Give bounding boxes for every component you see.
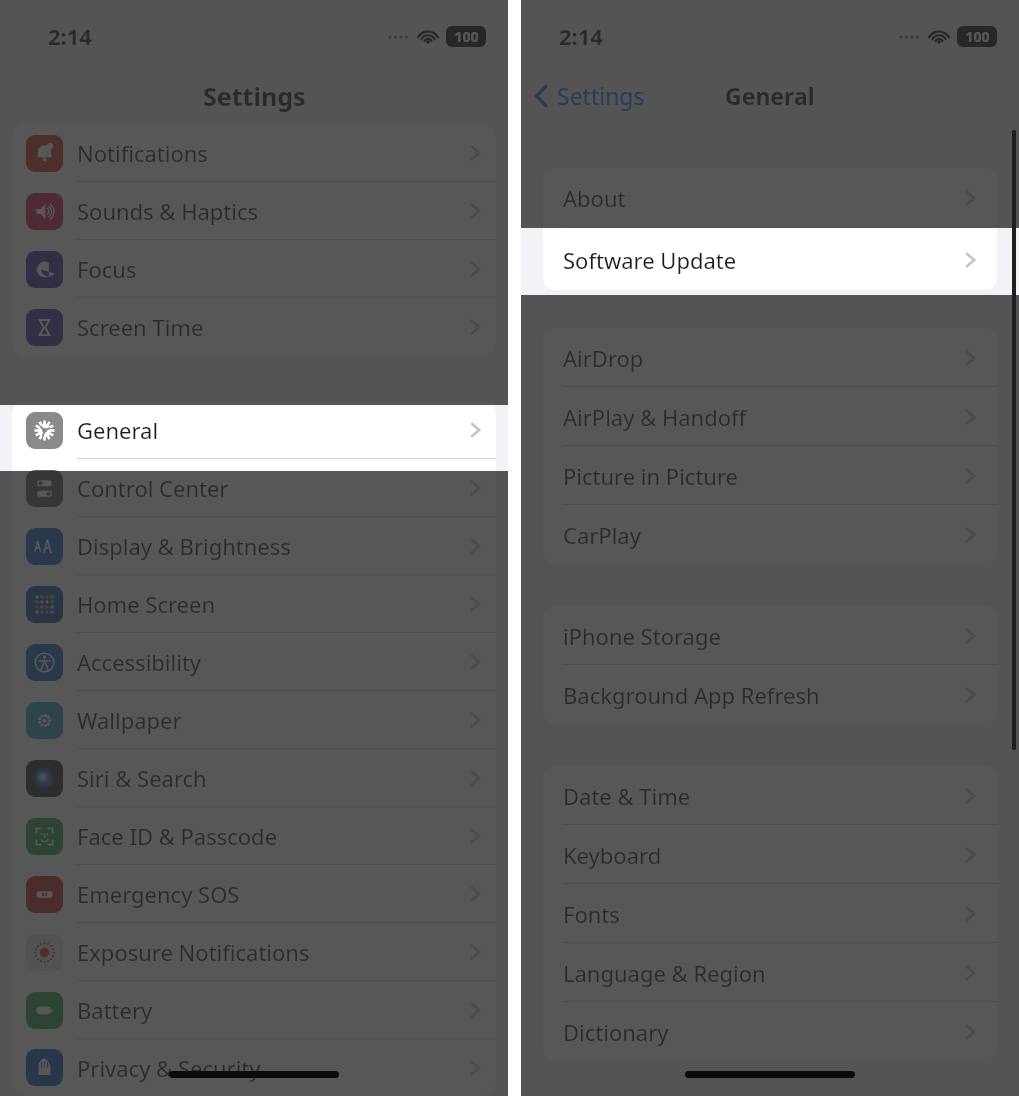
staticText: CarPlay [563,520,641,550]
button[interactable]: Battery [12,981,496,1039]
staticText: Focus [77,254,137,284]
staticText: Control Center [77,473,229,503]
staticText: About [563,183,626,213]
button[interactable]: Software Update [543,229,997,290]
button[interactable]: Display & Brightness [12,517,496,575]
staticText: Dictionary [563,1017,669,1047]
staticText: General [725,80,815,111]
staticText: Battery [77,995,153,1025]
staticText: Siri & Search [77,763,207,793]
button[interactable]: Settings [533,80,645,111]
button[interactable]: Control Center [12,459,496,517]
staticText: Keyboard [563,840,662,870]
button[interactable]: Dictionary [543,1002,997,1061]
staticText: Settings [203,79,306,113]
staticText: 100 [965,27,990,46]
button[interactable]: Accessibility [12,633,496,691]
staticText: AirDrop [563,343,644,373]
staticText: 100 [454,27,479,46]
button[interactable]: CarPlay [543,505,997,564]
staticText: Fonts [563,899,620,929]
button[interactable]: Home Screen [12,575,496,633]
button[interactable]: Privacy & Security [12,1039,496,1096]
button[interactable]: Software Update [543,227,997,286]
staticText: Language & Region [563,958,766,988]
button[interactable]: Face ID & Passcode [12,807,496,865]
staticText: Sounds & Haptics [77,196,259,226]
staticText: Background App Refresh [563,680,820,710]
staticText: Software Update [563,242,737,272]
staticText: Display & Brightness [77,531,291,561]
button[interactable]: Keyboard [543,825,997,884]
staticText: Emergency SOS [77,879,240,909]
button[interactable]: Language & Region [543,943,997,1002]
button[interactable]: Fonts [543,884,997,943]
button[interactable]: General [12,401,496,459]
button[interactable]: Picture in Picture [543,446,997,505]
button[interactable]: Exposure Notifications [12,923,496,981]
staticText: Wallpaper [77,705,182,735]
staticText: General [77,415,159,445]
staticText: 2:14 [48,21,92,51]
button[interactable]: Wallpaper [12,691,496,749]
staticText: Face ID & Passcode [77,821,278,851]
button[interactable]: Date & Time [543,766,997,825]
button[interactable]: Screen Time [12,298,496,356]
staticText: Home Screen [77,589,216,619]
button[interactable]: Emergency SOS [12,865,496,923]
button[interactable]: iPhone Storage [543,606,997,665]
button[interactable]: AirPlay & Handoff [543,387,997,446]
staticText: Privacy & Security [77,1053,261,1083]
staticText: Exposure Notifications [77,937,310,967]
button[interactable]: Siri & Search [12,749,496,807]
button[interactable]: About [543,168,997,227]
staticText: iPhone Storage [563,621,721,651]
button[interactable]: Focus [12,240,496,298]
button[interactable]: Sounds & Haptics [12,182,496,240]
staticText: Software Update [563,245,737,275]
staticText: Notifications [77,138,208,168]
staticText: AirPlay & Handoff [563,402,747,432]
button[interactable]: Background App Refresh [543,665,997,724]
button[interactable]: Notifications [12,124,496,182]
staticText: Settings [557,80,645,111]
button[interactable]: AirDrop [543,328,997,387]
staticText: Picture in Picture [563,461,738,491]
staticText: Accessibility [77,647,202,677]
staticText: Date & Time [563,781,691,811]
staticText: Screen Time [77,312,204,342]
staticText: 2:14 [559,21,603,51]
